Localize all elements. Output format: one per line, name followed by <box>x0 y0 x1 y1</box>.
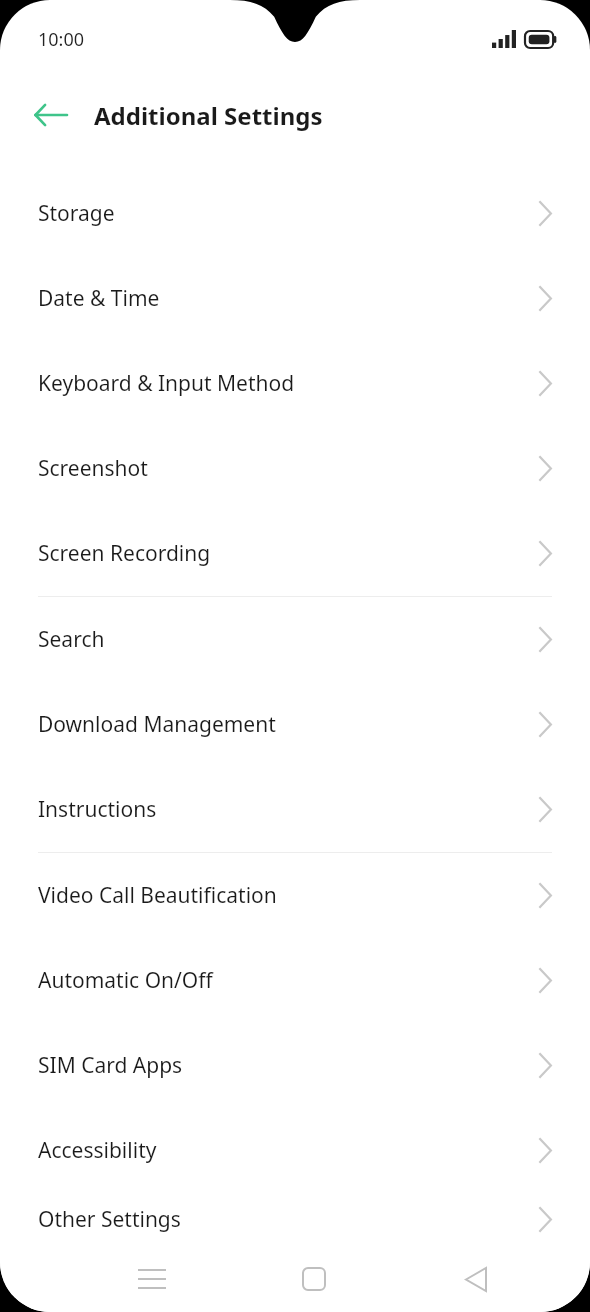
button[interactable]: Date & Time <box>0 256 590 341</box>
staticText: Keyboard & Input Method <box>38 369 539 398</box>
button[interactable]: Keyboard & Input Method <box>0 341 590 426</box>
button[interactable]: Instructions <box>0 767 590 852</box>
staticText: Storage <box>38 199 539 228</box>
button[interactable]: Download Management <box>0 682 590 767</box>
staticText: Search <box>38 625 539 654</box>
button[interactable]: Search <box>0 597 590 682</box>
staticText: Date & Time <box>38 284 539 313</box>
staticText: Screenshot <box>38 454 539 483</box>
button[interactable]: Automatic On/Off <box>0 938 590 1023</box>
button[interactable]: Home <box>272 1246 356 1312</box>
button[interactable]: Storage <box>0 171 590 256</box>
button[interactable]: Accessibility <box>0 1108 590 1193</box>
button[interactable]: Recent apps <box>110 1246 194 1312</box>
staticText: Screen Recording <box>38 539 539 568</box>
staticText: Video Call Beautification <box>38 881 539 910</box>
staticText: 10:00 <box>38 27 85 52</box>
staticText: Automatic On/Off <box>38 966 539 995</box>
staticText: Other Settings <box>38 1205 539 1234</box>
staticText: Accessibility <box>38 1136 539 1165</box>
staticText: Instructions <box>38 795 539 824</box>
staticText: Download Management <box>38 710 539 739</box>
button[interactable]: Screen Recording <box>0 511 590 596</box>
button[interactable]: Screenshot <box>0 426 590 511</box>
button[interactable]: Back <box>22 86 80 144</box>
button[interactable]: Other Settings <box>0 1193 590 1246</box>
button[interactable]: SIM Card Apps <box>0 1023 590 1108</box>
button[interactable]: Back <box>434 1246 518 1312</box>
staticText: Additional Settings <box>94 99 323 132</box>
button[interactable]: Video Call Beautification <box>0 853 590 938</box>
staticText: SIM Card Apps <box>38 1051 539 1080</box>
